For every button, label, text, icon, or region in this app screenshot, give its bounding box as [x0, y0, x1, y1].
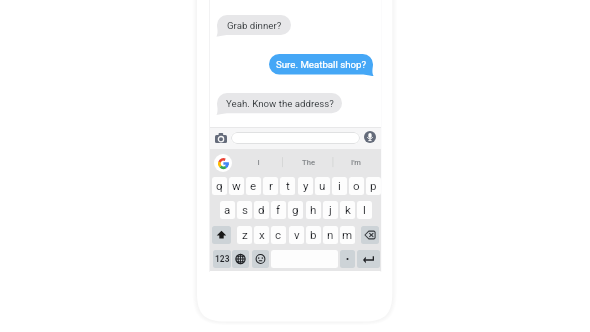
button[interactable]: r — [263, 177, 278, 195]
button[interactable]: n — [323, 226, 338, 244]
staticText: o — [353, 179, 360, 193]
button[interactable]: p — [366, 177, 381, 195]
button[interactable]: k — [340, 201, 355, 219]
staticText: y — [303, 179, 309, 193]
staticText: I — [257, 158, 260, 167]
button[interactable]: b — [306, 226, 321, 244]
button[interactable]: a — [220, 201, 235, 219]
button[interactable]: Emoji — [252, 250, 269, 268]
button[interactable]: f — [271, 201, 286, 219]
button[interactable]: h — [306, 201, 321, 219]
button[interactable]: g — [288, 201, 303, 219]
button[interactable]: Take photo — [215, 133, 227, 143]
button[interactable]: o — [349, 177, 364, 195]
staticText: l — [363, 203, 366, 217]
staticText: u — [319, 179, 326, 193]
staticText: h — [310, 203, 317, 217]
staticText: b — [310, 228, 317, 242]
staticText: Grab dinner? — [227, 20, 282, 31]
staticText: I'm — [351, 158, 361, 167]
staticText: p — [370, 179, 377, 193]
button[interactable] — [231, 132, 360, 144]
staticText: k — [345, 203, 351, 217]
staticText: The — [302, 158, 315, 167]
button[interactable]: Backspace — [361, 226, 379, 244]
button[interactable]: Voice input — [364, 131, 376, 143]
button[interactable]: i — [332, 177, 347, 195]
button[interactable]: Enter — [357, 250, 380, 268]
button[interactable]: Sure. Meatball shop? — [269, 54, 373, 77]
staticText: x — [259, 228, 265, 242]
button[interactable]: w — [229, 177, 244, 195]
staticText: r — [269, 179, 273, 193]
staticText: a — [224, 203, 231, 217]
button[interactable]: I'm — [334, 154, 378, 171]
staticText: m — [342, 228, 353, 242]
button[interactable]: q — [212, 177, 227, 195]
staticText: Yeah. Know the address? — [226, 98, 334, 109]
staticText: Sure. Meatball shop? — [276, 59, 367, 70]
staticText: s — [242, 203, 248, 217]
staticText: t — [286, 179, 290, 193]
staticText: q — [216, 179, 223, 193]
button[interactable]: Grab dinner? — [217, 15, 291, 38]
staticText: e — [250, 179, 257, 193]
button[interactable]: The — [286, 154, 330, 171]
button[interactable]: Period — [340, 250, 355, 268]
staticText: n — [327, 228, 334, 242]
button[interactable]: d — [254, 201, 269, 219]
button[interactable]: Change language — [232, 250, 249, 268]
staticText: v — [294, 228, 300, 242]
button[interactable]: v — [289, 226, 304, 244]
button[interactable]: j — [323, 201, 338, 219]
button[interactable]: I — [236, 154, 280, 171]
button[interactable]: y — [298, 177, 313, 195]
button[interactable]: e — [246, 177, 261, 195]
button[interactable]: Google — [214, 154, 232, 172]
staticText: z — [242, 228, 248, 242]
button[interactable]: m — [340, 226, 355, 244]
button[interactable]: c — [271, 226, 286, 244]
staticText: g — [292, 203, 299, 217]
staticText: i — [338, 179, 341, 193]
button[interactable]: x — [254, 226, 269, 244]
staticText: d — [258, 203, 265, 217]
button[interactable]: l — [357, 201, 372, 219]
staticText: f — [276, 203, 281, 217]
staticText: 123 — [215, 254, 230, 264]
button[interactable]: Shift — [212, 226, 231, 244]
button[interactable]: z — [237, 226, 252, 244]
button[interactable]: Numbers — [213, 250, 231, 268]
button[interactable]: u — [315, 177, 330, 195]
staticText: w — [232, 179, 241, 193]
staticText: c — [275, 228, 282, 242]
button[interactable]: s — [237, 201, 252, 219]
button[interactable]: Yeah. Know the address? — [217, 93, 342, 116]
button[interactable]: t — [280, 177, 295, 195]
staticText: j — [329, 203, 332, 217]
